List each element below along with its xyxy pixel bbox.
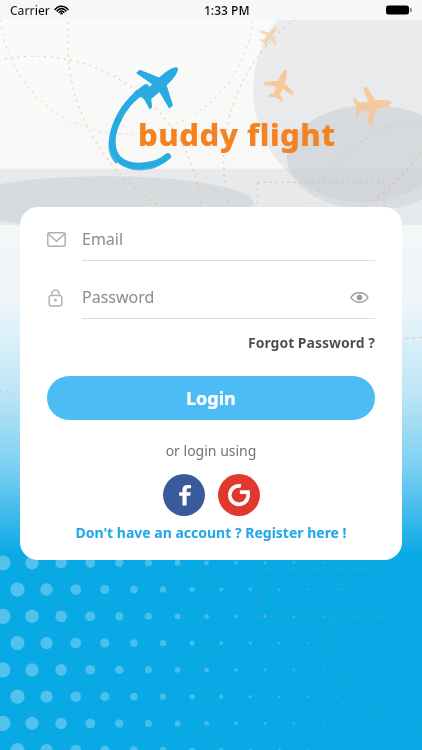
button[interactable]: Login: [47, 376, 375, 420]
staticText: Carrier: [10, 2, 50, 18]
staticText: buddy flight: [138, 113, 336, 155]
staticText: Forgot Password ?: [248, 333, 375, 352]
button[interactable]: Don't have an account ? Register here !: [47, 523, 375, 542]
button[interactable]: Forgot Password ?: [47, 333, 375, 352]
button[interactable]: Login with Google: [218, 474, 260, 516]
staticText: or login using: [47, 441, 375, 460]
button[interactable]: Email: [47, 228, 375, 261]
staticText: Email: [82, 228, 124, 250]
staticText: 1:33 PM: [204, 2, 250, 18]
button[interactable]: Password: [47, 286, 375, 319]
other: Show password: [350, 291, 369, 304]
button[interactable]: Login with Facebook: [163, 474, 205, 516]
staticText: Don't have an account ? Register here !: [75, 523, 347, 542]
staticText: Login: [186, 386, 236, 411]
staticText: Password: [82, 286, 155, 308]
